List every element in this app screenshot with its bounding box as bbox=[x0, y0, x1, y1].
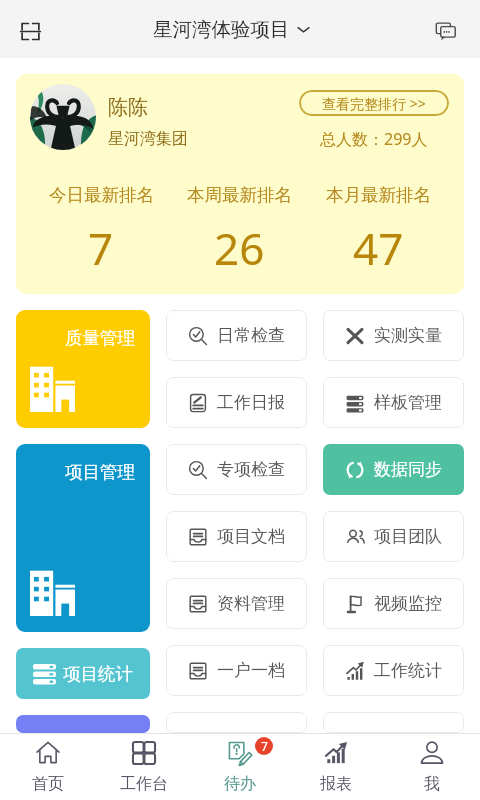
staticText: 总人数：299人 bbox=[320, 128, 428, 150]
button[interactable]: 样板管理 bbox=[323, 377, 464, 428]
staticText: 星河湾集团 bbox=[108, 129, 188, 149]
button[interactable]: 日常检查 bbox=[166, 310, 307, 361]
button[interactable] bbox=[323, 712, 464, 733]
staticText: 首页 bbox=[32, 774, 64, 794]
staticText: 视频监控 bbox=[374, 593, 442, 614]
staticText: 报表 bbox=[320, 774, 352, 794]
staticText: 本周最新排名 bbox=[187, 184, 292, 206]
staticText: 样板管理 bbox=[374, 392, 442, 413]
staticText: 我 bbox=[424, 774, 440, 794]
staticText: 日常检查 bbox=[217, 325, 285, 346]
button[interactable]: 项目团队 bbox=[323, 511, 464, 562]
button[interactable]: 质量管理 bbox=[16, 310, 150, 428]
staticText: 数据同步 bbox=[374, 459, 442, 480]
button[interactable]: 实测实量 bbox=[323, 310, 464, 361]
button[interactable]: 星河湾体验项目 bbox=[147, 11, 316, 48]
staticText: 查看完整排行 >> bbox=[322, 94, 426, 113]
staticText: 一户一档 bbox=[217, 660, 285, 681]
button[interactable]: 项目管理 bbox=[16, 444, 150, 632]
staticText: 26 bbox=[214, 218, 265, 278]
staticText: 专项检查 bbox=[217, 459, 285, 480]
button[interactable] bbox=[16, 715, 150, 733]
button[interactable]: 数据同步 bbox=[323, 444, 464, 495]
staticText: 实测实量 bbox=[374, 325, 442, 346]
staticText: 项目管理 bbox=[65, 461, 135, 483]
staticText: 陈陈 bbox=[108, 95, 148, 120]
button[interactable]: 本周最新排名 bbox=[170, 184, 309, 278]
button[interactable]: 资料管理 bbox=[166, 578, 307, 629]
button[interactable]: 我 bbox=[384, 734, 480, 800]
button[interactable]: 今日最新排名 bbox=[32, 184, 170, 278]
staticText: 星河湾体验项目 bbox=[153, 17, 290, 42]
staticText: 本月最新排名 bbox=[326, 184, 431, 206]
button[interactable]: 查看完整排行 >> bbox=[299, 90, 449, 116]
staticText: 项目统计 bbox=[63, 663, 133, 685]
staticText: 47 bbox=[353, 218, 404, 278]
staticText: 项目文档 bbox=[217, 526, 285, 547]
button[interactable]: 项目统计 bbox=[16, 648, 150, 699]
staticText: 项目团队 bbox=[374, 526, 442, 547]
button[interactable] bbox=[166, 712, 307, 733]
staticText: 工作统计 bbox=[374, 660, 442, 681]
button[interactable]: 工作日报 bbox=[166, 377, 307, 428]
staticText: 质量管理 bbox=[65, 327, 135, 349]
button[interactable]: 本月最新排名 bbox=[309, 184, 448, 278]
button[interactable]: 7 bbox=[192, 734, 288, 800]
staticText: 资料管理 bbox=[217, 593, 285, 614]
staticText: 工作日报 bbox=[217, 392, 285, 413]
button[interactable]: 专项检查 bbox=[166, 444, 307, 495]
button[interactable]: Messages bbox=[424, 9, 468, 53]
button[interactable]: Scan QR code bbox=[8, 9, 52, 53]
button[interactable]: 报表 bbox=[288, 734, 384, 800]
staticText: 待办 bbox=[224, 774, 256, 794]
staticText: 工作台 bbox=[120, 774, 168, 794]
button[interactable]: 项目文档 bbox=[166, 511, 307, 562]
staticText: 7 bbox=[261, 738, 268, 754]
button[interactable]: 首页 bbox=[0, 734, 96, 800]
staticText: 7 bbox=[88, 218, 114, 278]
button[interactable]: 工作统计 bbox=[323, 645, 464, 696]
button[interactable]: 视频监控 bbox=[323, 578, 464, 629]
staticText: 今日最新排名 bbox=[49, 184, 154, 206]
button[interactable]: 工作台 bbox=[96, 734, 192, 800]
button[interactable]: 一户一档 bbox=[166, 645, 307, 696]
